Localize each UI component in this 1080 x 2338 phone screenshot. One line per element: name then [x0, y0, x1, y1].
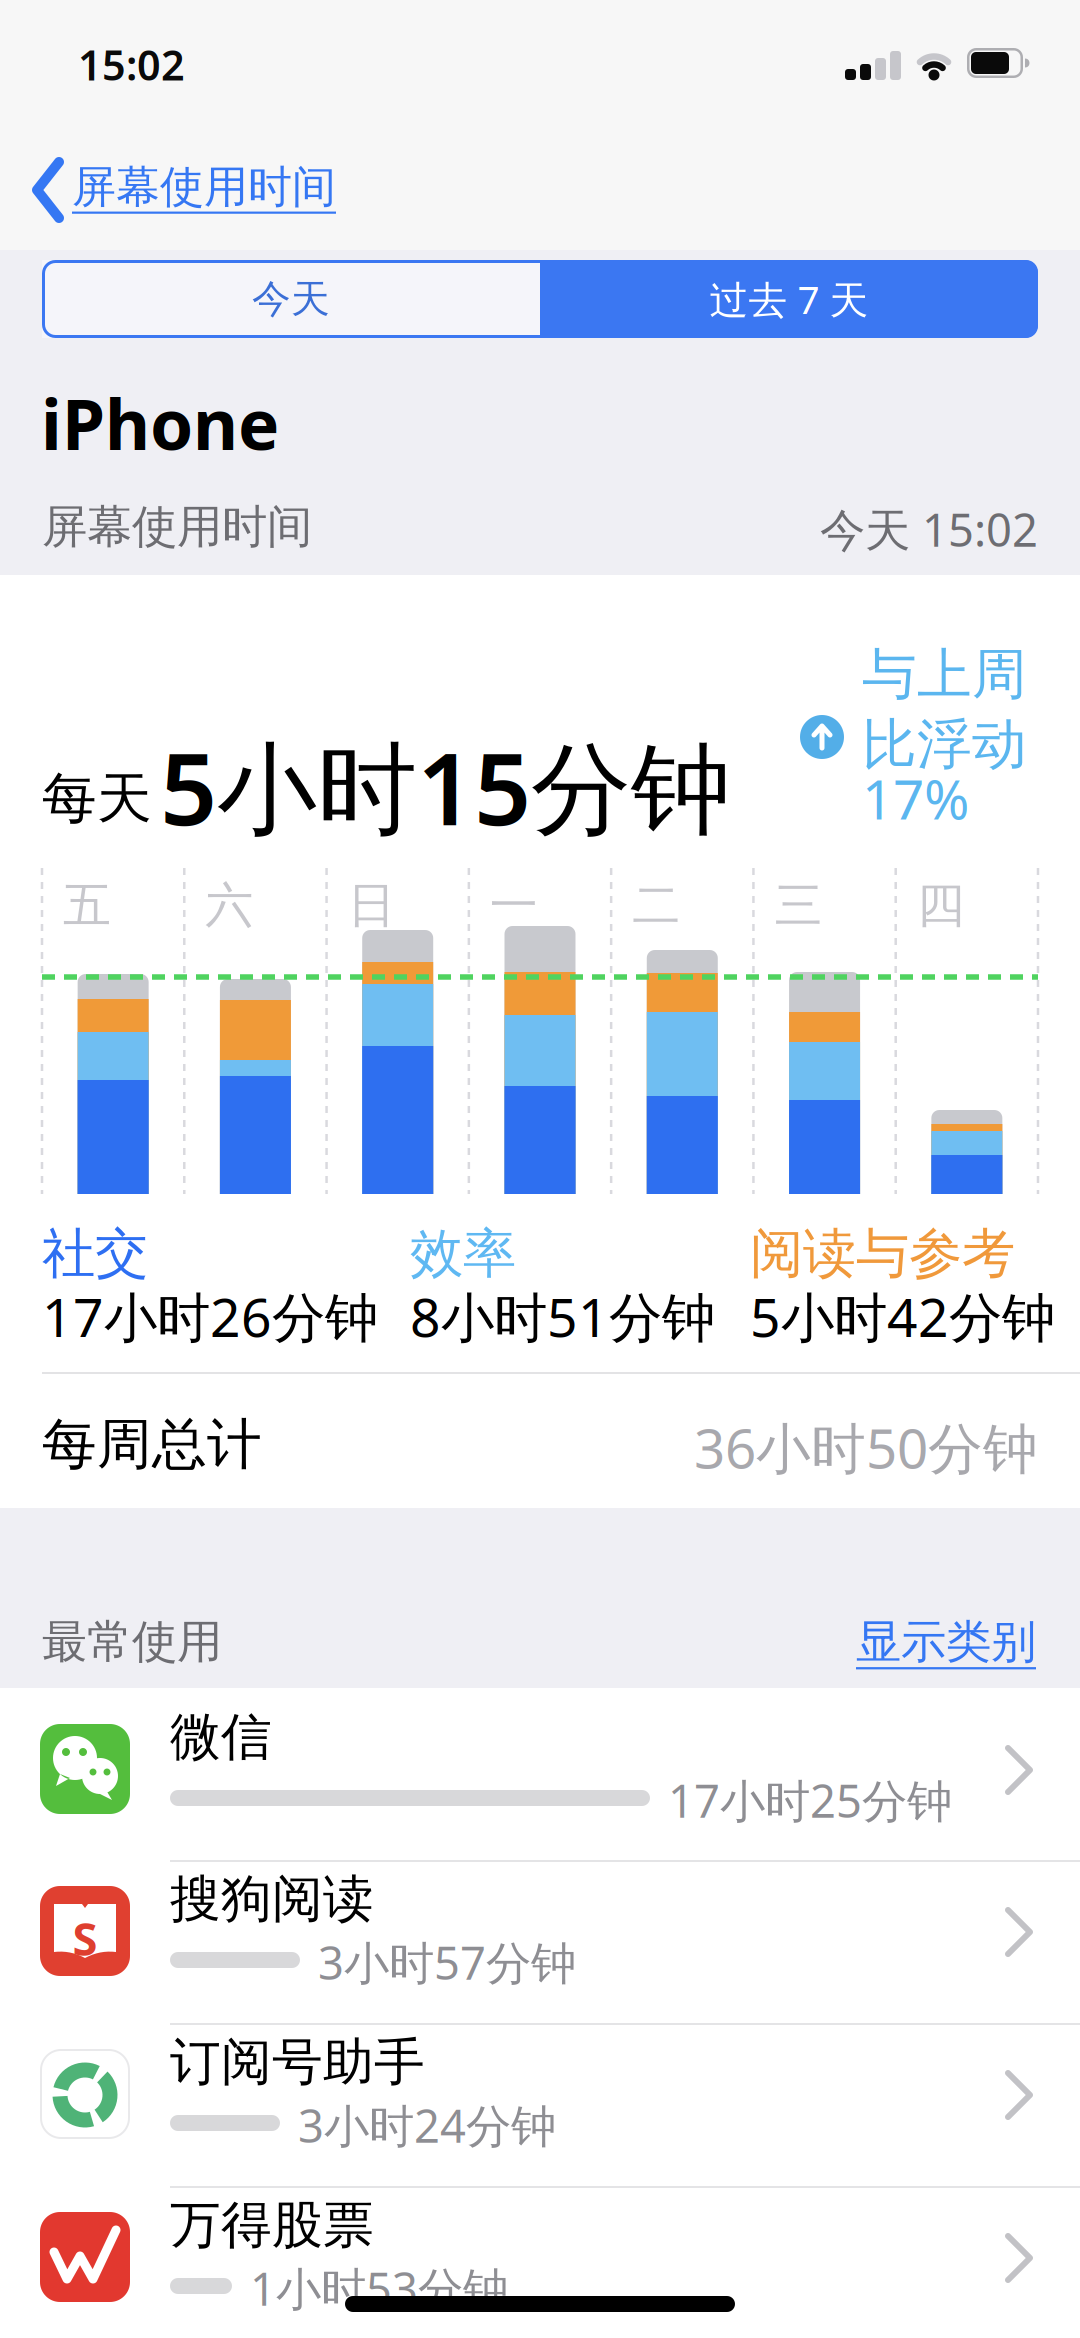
staticText: 3小时57分钟 — [318, 1932, 576, 1992]
button[interactable]: 微信 — [0, 1700, 1080, 1860]
staticText: 六 — [205, 876, 253, 935]
button[interactable]: 显示类别 — [856, 1614, 1036, 1670]
button[interactable]: 过去 7 天 — [540, 260, 1038, 338]
staticText: 5小时42分钟 — [750, 1281, 1055, 1352]
staticText: 日 — [348, 876, 396, 935]
staticText: 36小时50分钟 — [694, 1411, 1038, 1484]
staticText: 与上周 — [862, 641, 1027, 708]
staticText: 万得股票 — [170, 2194, 374, 2256]
staticText: 屏幕使用时间 — [72, 160, 336, 214]
staticText: 二 — [632, 876, 680, 935]
staticText: 一 — [490, 876, 538, 935]
staticText: 比浮动 — [862, 711, 1027, 778]
staticText: S — [72, 1908, 97, 1968]
button[interactable]: 今天 — [42, 260, 540, 338]
staticText: 微信 — [170, 1706, 272, 1768]
staticText: 订阅号助手 — [170, 2031, 425, 2093]
staticText: 四 — [917, 876, 965, 935]
staticText: 三 — [774, 876, 822, 935]
staticText: 过去 7 天 — [709, 273, 868, 325]
button[interactable]: 屏幕使用时间 — [0, 0, 1080, 2338]
staticText: 1小时53分钟 — [250, 2258, 508, 2318]
staticText: 最常使用 — [42, 1614, 222, 1670]
staticText: 5小时15分钟 — [160, 720, 731, 853]
staticText: 五 — [63, 876, 111, 935]
staticText: 屏幕使用时间 — [42, 499, 312, 555]
staticText: iPhone — [41, 377, 279, 469]
staticText: 每周总计 — [42, 1411, 262, 1478]
staticText: 17小时25分钟 — [668, 1770, 952, 1830]
staticText: 社交 — [42, 1221, 148, 1286]
staticText: 每天 — [42, 765, 152, 832]
staticText: 今天 15:02 — [820, 499, 1038, 559]
staticText: 阅读与参考 — [750, 1221, 1015, 1286]
staticText: 8小时51分钟 — [410, 1281, 715, 1352]
staticText: 15:02 — [78, 37, 185, 92]
staticText: 17% — [862, 762, 969, 835]
button[interactable]: S — [0, 1862, 1080, 2022]
staticText: 3小时24分钟 — [298, 2095, 556, 2155]
staticText: 搜狗阅读 — [170, 1868, 374, 1930]
staticText: 显示类别 — [856, 1614, 1036, 1670]
staticText: 17小时26分钟 — [42, 1281, 378, 1352]
staticText: 今天 — [252, 275, 330, 323]
staticText: 效率 — [410, 1221, 516, 1286]
button[interactable]: 订阅号助手 — [0, 2025, 1080, 2185]
button[interactable]: 万得股票 — [0, 2188, 1080, 2338]
